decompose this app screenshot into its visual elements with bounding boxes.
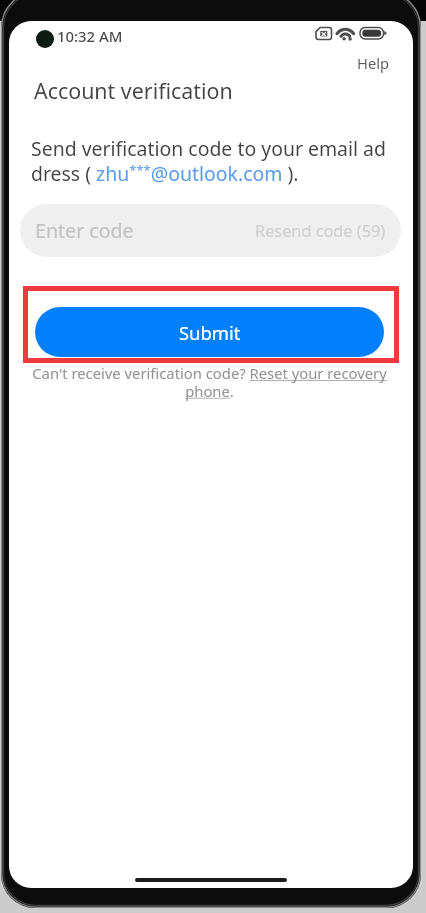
staticText: Submit	[179, 320, 241, 345]
button[interactable]: Help	[346, 48, 400, 78]
staticText: Enter code	[35, 217, 134, 244]
staticText: Help	[357, 53, 389, 73]
staticText: Account verification	[34, 76, 233, 105]
staticText: Send verification code to your email ad	[31, 135, 386, 161]
staticText: dress ( zhu***@outlook.com ).	[31, 160, 299, 186]
button[interactable]: Resend code (59)	[255, 220, 386, 242]
button[interactable]: Can't receive verification code? Reset y…	[22, 363, 397, 401]
button[interactable]: Submit	[35, 307, 384, 357]
staticText: 10:32 AM	[57, 26, 123, 46]
button[interactable]: Enter code	[20, 204, 401, 257]
staticText: Resend code (59)	[255, 220, 386, 242]
